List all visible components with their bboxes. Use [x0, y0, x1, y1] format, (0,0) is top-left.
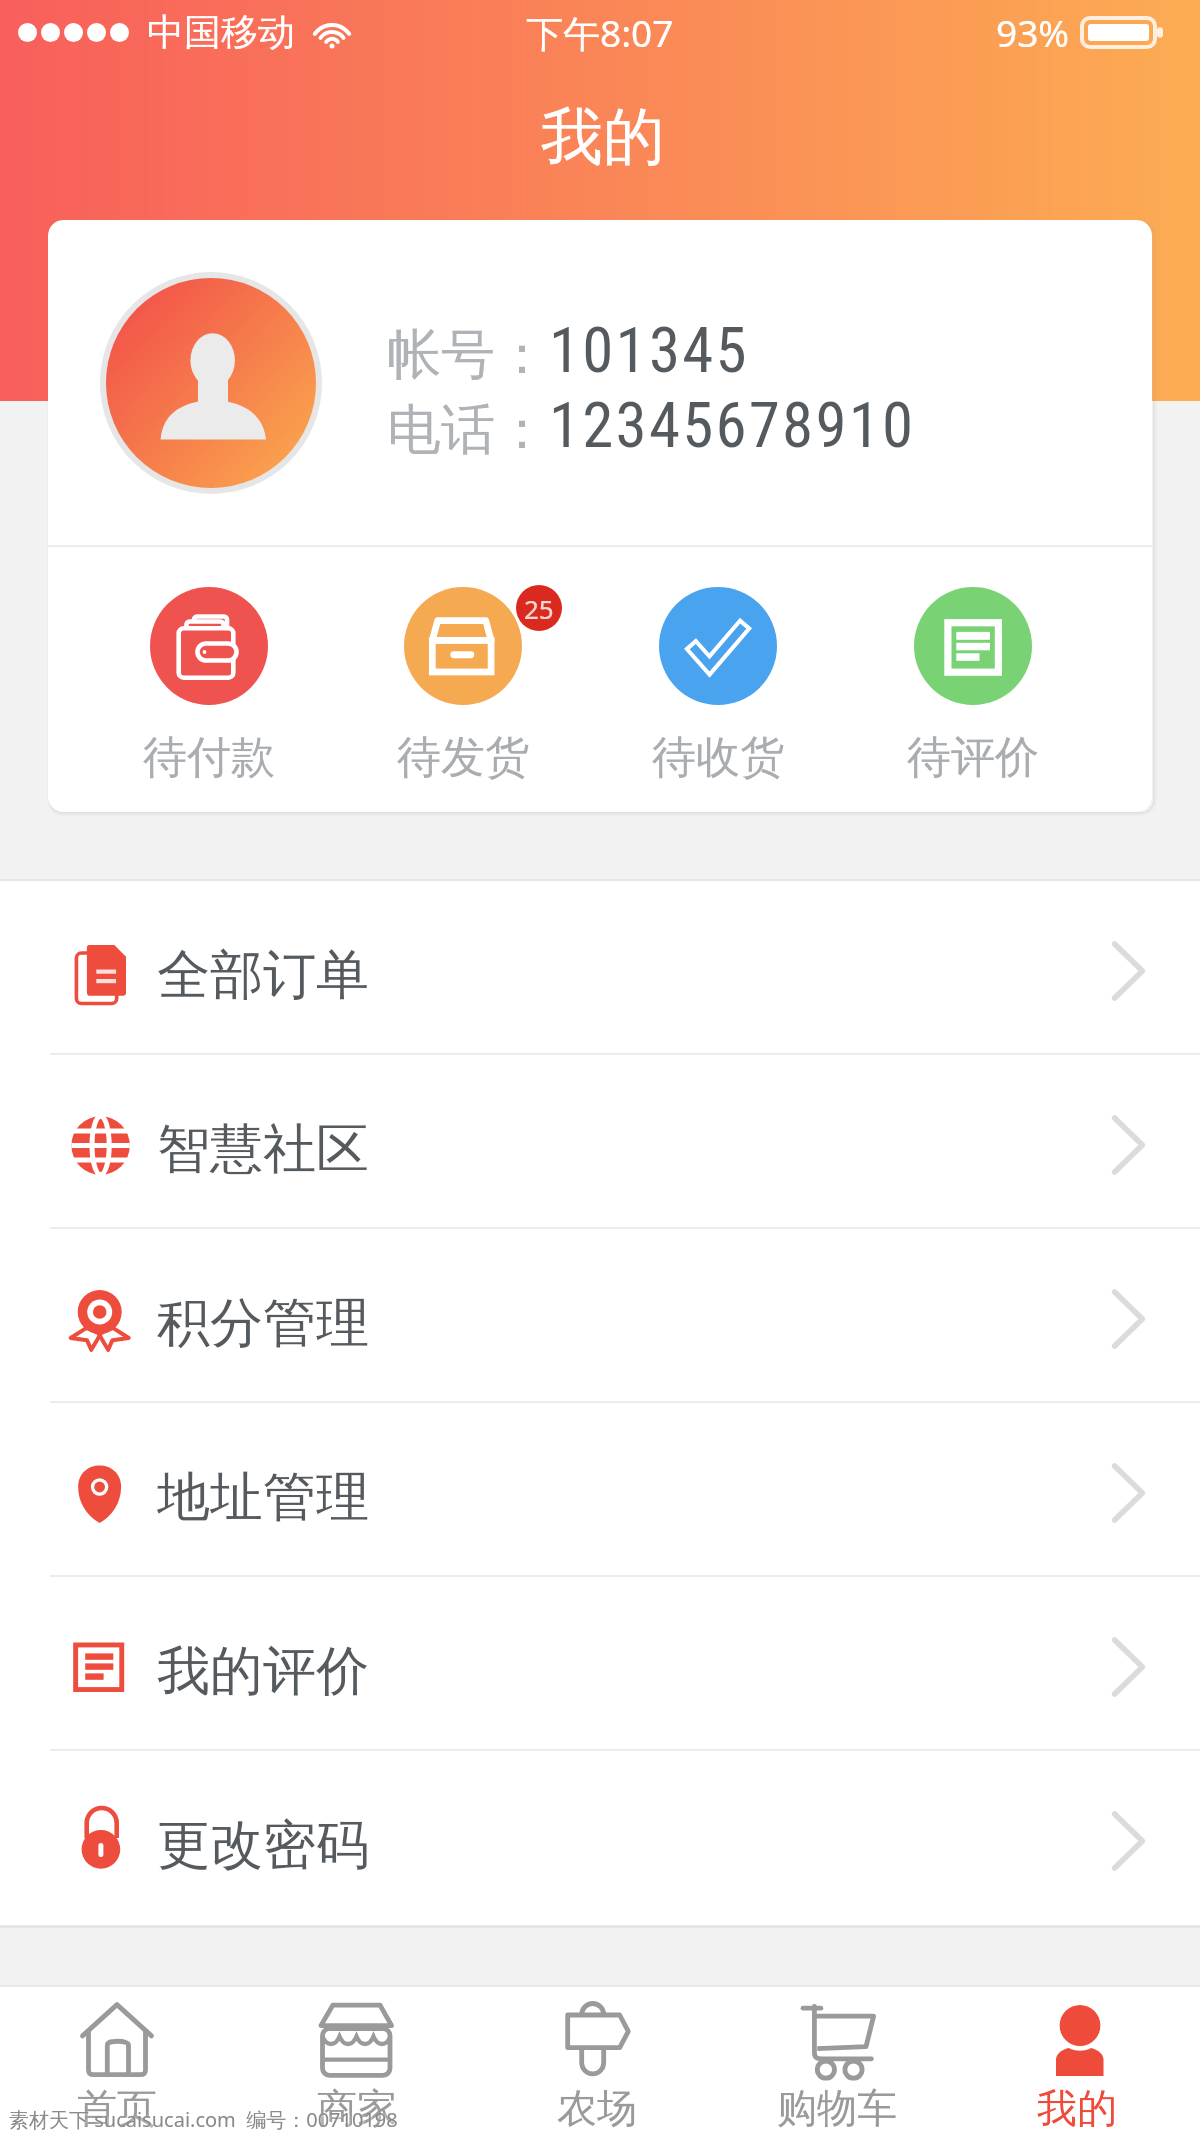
- button[interactable]: 积分管理: [0, 1229, 1200, 1403]
- button[interactable]: 待收货: [590, 547, 845, 812]
- staticText: 待收货: [652, 730, 784, 785]
- button[interactable]: 购物车: [720, 1987, 960, 2142]
- staticText: 下午8:07: [526, 7, 674, 58]
- staticText: 全部订单: [157, 942, 369, 1009]
- staticText: 商家: [317, 2083, 397, 2133]
- button[interactable]: 待评价: [845, 547, 1100, 812]
- button[interactable]: 商家: [240, 1987, 480, 2142]
- staticText: 首页: [77, 2083, 157, 2133]
- button[interactable]: 地址管理: [0, 1403, 1200, 1577]
- staticText: 中国移动: [147, 9, 295, 56]
- staticText: 智慧社区: [157, 1116, 369, 1183]
- button[interactable]: Account 101345: [48, 220, 1152, 545]
- staticText: 农场: [557, 2083, 637, 2133]
- staticText: 地址管理: [157, 1464, 369, 1531]
- staticText: 我的评价: [157, 1638, 369, 1705]
- staticText: 电话：: [387, 396, 549, 464]
- button[interactable]: 更改密码: [0, 1751, 1200, 1925]
- staticText: 我的: [1037, 2083, 1117, 2133]
- button[interactable]: 待付款: [82, 547, 336, 812]
- staticText: 12345678910: [549, 389, 916, 463]
- button[interactable]: 首页: [0, 1987, 240, 2142]
- staticText: 积分管理: [157, 1290, 369, 1357]
- staticText: 101345: [549, 314, 749, 388]
- staticText: 帐号：: [387, 321, 549, 389]
- staticText: 待评价: [907, 730, 1039, 785]
- staticText: 我的: [541, 98, 665, 176]
- staticText: 购物车: [777, 2083, 897, 2133]
- staticText: 待发货: [397, 730, 529, 785]
- button[interactable]: 25: [336, 547, 590, 812]
- button[interactable]: 智慧社区: [0, 1055, 1200, 1229]
- button[interactable]: 我的评价: [0, 1577, 1200, 1751]
- button[interactable]: 我的: [960, 1987, 1200, 2142]
- staticText: 25: [524, 591, 554, 626]
- button[interactable]: 全部订单: [0, 881, 1200, 1055]
- staticText: 待付款: [143, 730, 275, 785]
- button[interactable]: 农场: [480, 1987, 720, 2142]
- staticText: 更改密码: [157, 1812, 369, 1879]
- staticText: 93%: [996, 7, 1070, 57]
- staticText: 素材天下 sucaisucai.com 编号：00710198: [9, 2106, 398, 2133]
